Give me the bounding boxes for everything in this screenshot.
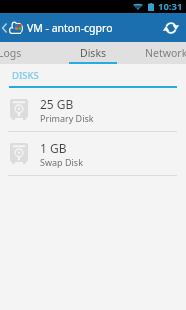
button[interactable]: Disks <box>63 42 123 64</box>
staticText: VM - anton-cgpro <box>27 21 113 35</box>
button[interactable]: 25 GB <box>0 88 186 131</box>
staticText: DISKS <box>12 69 39 82</box>
staticText: Disks <box>80 46 107 60</box>
button[interactable]: Navigate up <box>0 13 23 42</box>
staticText: 1 GB <box>40 140 67 156</box>
staticText: Swap Disk <box>40 156 83 168</box>
staticText: Primary Disk <box>40 112 94 124</box>
staticText: Network <box>145 46 186 60</box>
button[interactable]: Network <box>136 42 186 64</box>
button[interactable]: 1 GB <box>0 132 186 175</box>
button[interactable]: Refresh <box>156 13 185 42</box>
button[interactable]: Logs <box>0 42 40 64</box>
staticText: 10:31 <box>158 0 183 13</box>
staticText: 25 GB <box>40 96 74 112</box>
staticText: Logs <box>0 46 22 60</box>
